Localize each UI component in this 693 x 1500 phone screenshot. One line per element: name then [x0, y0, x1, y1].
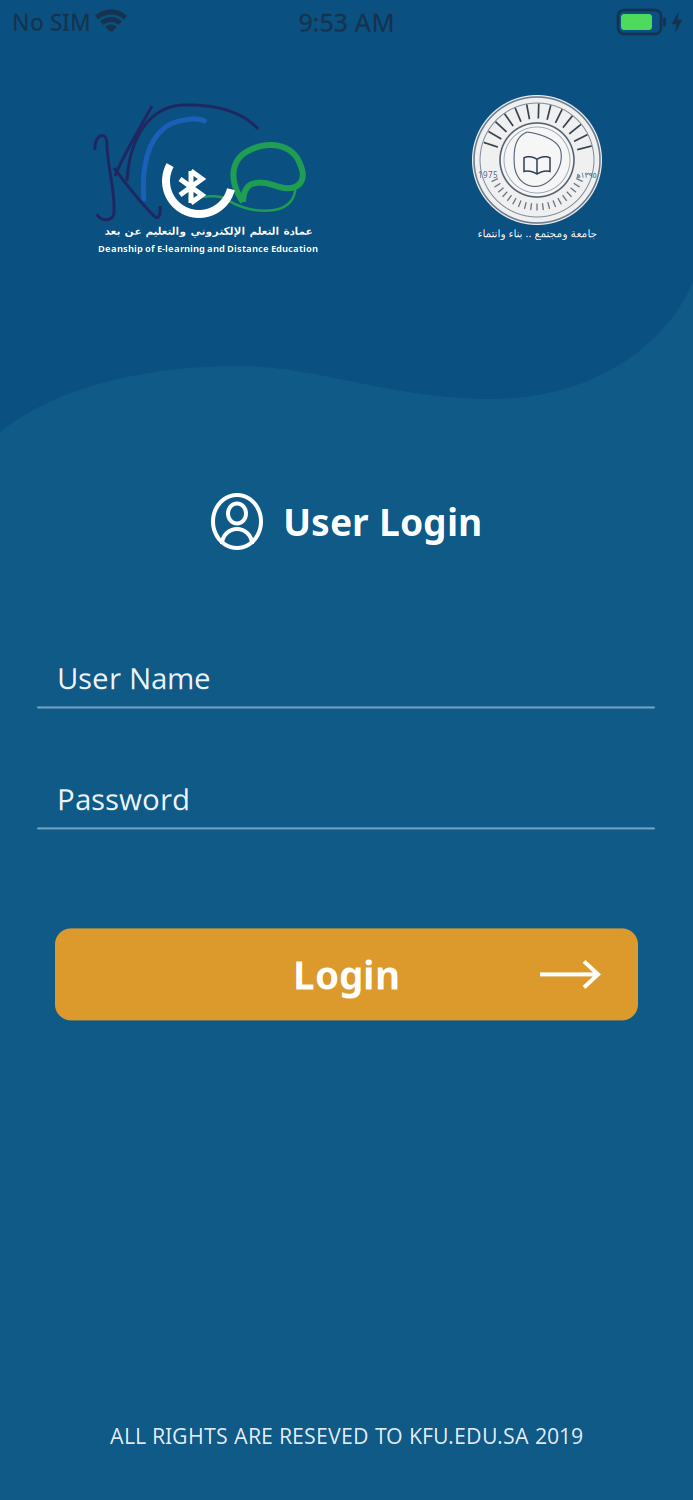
- staticText: User Name: [57, 658, 211, 697]
- staticText: Deanship of E-learning and Distance Educ…: [98, 242, 318, 254]
- staticText: No SIM: [12, 7, 91, 37]
- staticText: عمادة التعلم الإلكتروني والتعليم عن بعد: [104, 225, 312, 237]
- staticText: Password: [57, 779, 190, 818]
- button[interactable]: Login: [55, 928, 638, 1020]
- staticText: ALL RIGHTS ARE RESEVED TO KFU.EDU.SA 201…: [110, 1422, 583, 1450]
- staticText: جامعة ومجتمع .. بناء وانتماء: [477, 226, 597, 240]
- staticText: 9:53 AM: [298, 5, 394, 39]
- staticText: ١٣٩٥ﻫ: [576, 170, 596, 180]
- staticText: User Login: [283, 497, 482, 546]
- staticText: 1975: [478, 170, 498, 180]
- staticText: Login: [293, 949, 400, 1000]
